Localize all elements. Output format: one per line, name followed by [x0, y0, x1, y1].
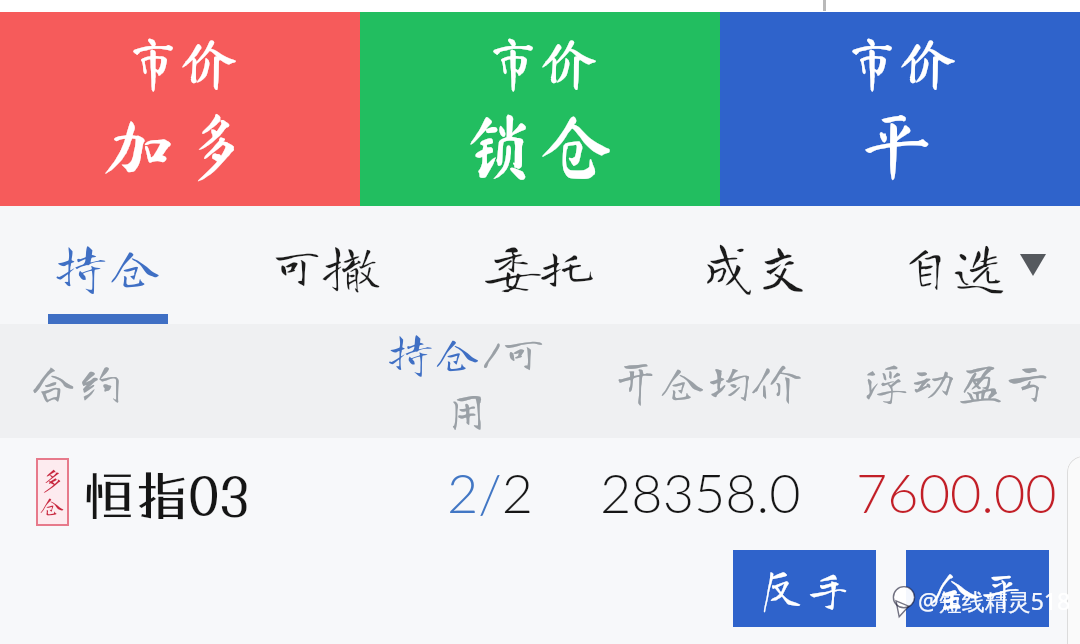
- staticText: 7600.00: [856, 460, 1057, 525]
- staticText: @短线精灵518: [918, 585, 1071, 616]
- button[interactable]: 持仓: [0, 206, 216, 324]
- staticText: 仓: [39, 492, 66, 518]
- staticText: 平: [861, 110, 940, 182]
- staticText: 成交: [702, 238, 810, 292]
- button[interactable]: 委托: [432, 206, 648, 324]
- staticText: 浮动盈亏: [863, 358, 1051, 405]
- button[interactable]: 反手: [733, 550, 876, 627]
- staticText: 28358.0: [600, 460, 801, 525]
- staticText: 2/2: [447, 460, 534, 525]
- staticText: 全平: [932, 566, 1024, 612]
- button[interactable]: 可撤: [216, 206, 432, 324]
- button[interactable]: 市价: [360, 12, 720, 206]
- button[interactable]: 市价: [0, 12, 360, 206]
- staticText: 持仓/可用: [387, 329, 547, 433]
- staticText: 委托: [486, 238, 594, 292]
- staticText: 开仓均价: [612, 358, 800, 405]
- staticText: 市价: [485, 36, 597, 92]
- staticText: 市价: [844, 36, 956, 92]
- staticText: 自选: [898, 238, 1006, 292]
- staticText: 加多: [102, 110, 259, 182]
- staticText: 合约: [30, 358, 124, 405]
- staticText: 市价: [125, 36, 237, 92]
- staticText: 多: [39, 466, 66, 492]
- button[interactable]: 自选: [864, 206, 1080, 324]
- staticText: 可撤: [270, 238, 378, 292]
- button[interactable]: 市价: [720, 12, 1080, 206]
- staticText: 锁仓: [462, 110, 619, 182]
- button[interactable]: 全平: [906, 550, 1049, 627]
- staticText: 持仓: [54, 238, 162, 292]
- staticText: 反手: [759, 566, 851, 612]
- staticText: 恒指03: [82, 464, 250, 527]
- button[interactable]: 成交: [648, 206, 864, 324]
